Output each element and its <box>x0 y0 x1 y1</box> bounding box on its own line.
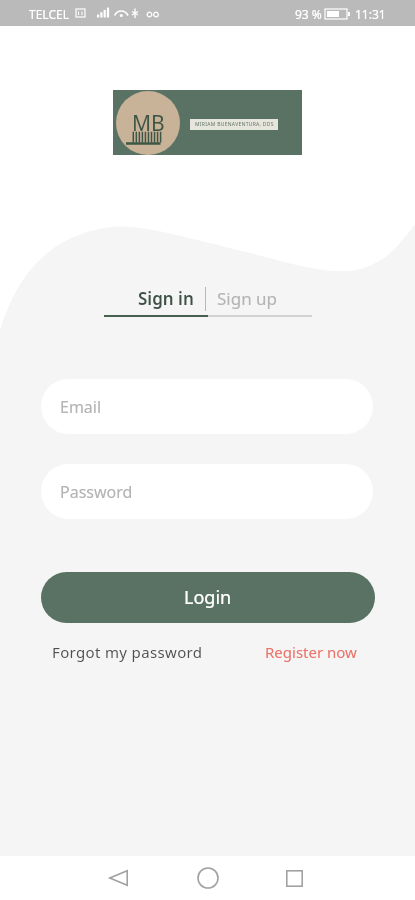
staticText: MB <box>132 109 165 138</box>
staticText: Forgot my password <box>52 642 203 662</box>
staticText: TELCEL <box>29 6 69 22</box>
button[interactable]: Email <box>41 379 373 434</box>
staticText: Sign up <box>217 287 278 310</box>
staticText: MIRIAM BUENAVENTURA, DDS <box>195 121 274 128</box>
staticText: Sign in <box>138 287 194 310</box>
button[interactable]: Register now <box>260 639 362 665</box>
button[interactable]: Sign up <box>206 283 290 314</box>
staticText: Password <box>60 481 133 503</box>
staticText: 93 % <box>295 6 322 22</box>
button[interactable]: Login <box>41 572 375 623</box>
button[interactable]: Sign in <box>126 283 205 314</box>
button[interactable]: Back <box>96 856 140 900</box>
staticText: Email <box>60 396 102 418</box>
staticText: Login <box>184 585 232 610</box>
button[interactable]: Forgot my password <box>47 639 208 665</box>
staticText: Register now <box>265 642 357 662</box>
button[interactable]: Home <box>186 856 230 900</box>
button[interactable]: Password <box>41 464 373 519</box>
button[interactable]: Recent apps <box>272 856 316 900</box>
staticText: 11:31 <box>355 6 386 22</box>
